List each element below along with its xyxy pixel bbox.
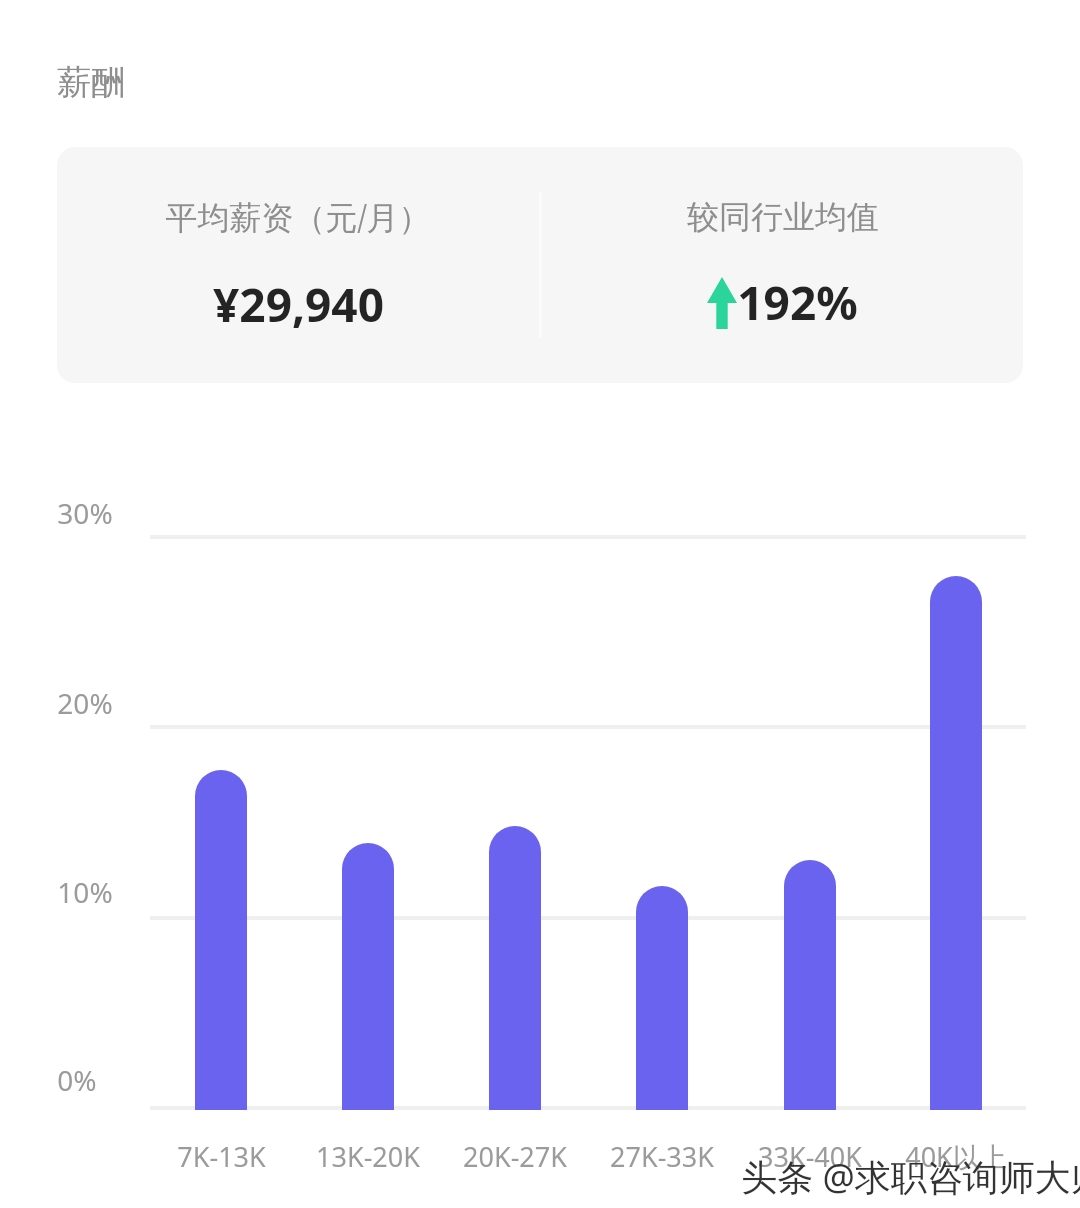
staticText: 40K以上 <box>905 1138 1007 1175</box>
staticText: 13K-20K <box>316 1138 420 1175</box>
staticText: 20% <box>57 684 113 722</box>
button[interactable]: 平均薪资（元/月） <box>57 147 1023 383</box>
staticText: 33K-40K <box>758 1138 862 1175</box>
staticText: 平均薪资（元/月） <box>165 195 431 239</box>
staticText: 0% <box>57 1061 97 1099</box>
staticText: 30% <box>57 494 113 532</box>
staticText: 7K-13K <box>177 1138 266 1175</box>
staticText: 10% <box>57 873 113 911</box>
staticText: 较同行业均值 <box>687 197 879 237</box>
staticText: 20K-27K <box>463 1138 567 1175</box>
staticText: 192% <box>737 271 858 334</box>
staticText: 头条 @求职咨询师大师兄 <box>741 1152 1080 1201</box>
staticText: 27K-33K <box>610 1138 714 1175</box>
button[interactable] <box>0 0 1080 1208</box>
staticText: 薪酬 <box>57 61 125 104</box>
other: Increase <box>707 277 737 329</box>
staticText: ¥29,940 <box>213 273 384 336</box>
